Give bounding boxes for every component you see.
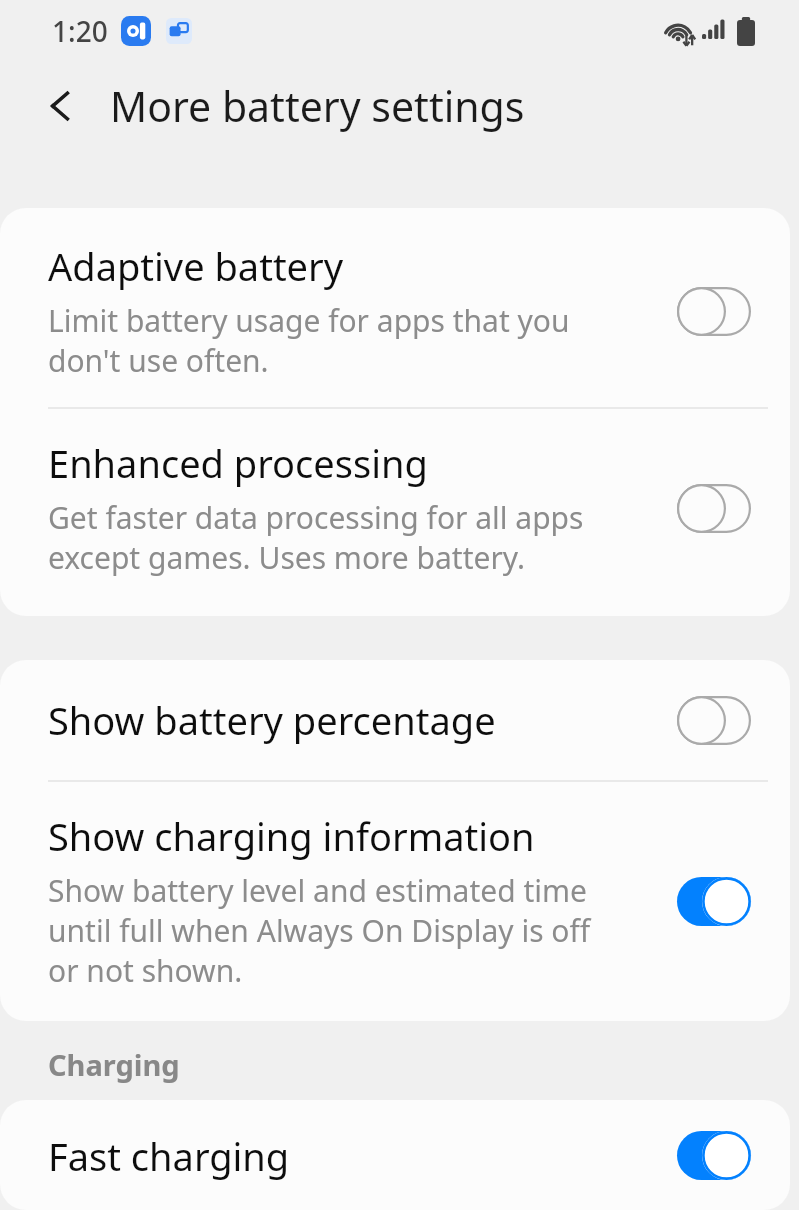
staticText: Limit battery usage for apps that you do… <box>48 300 570 381</box>
staticText: Adaptive battery <box>48 240 344 292</box>
button[interactable]: Show battery percentage <box>0 660 790 780</box>
staticText: Show battery level and estimated time un… <box>48 870 591 991</box>
staticText: Enhanced processing <box>48 437 428 489</box>
button[interactable]: Fast charging <box>0 1100 790 1210</box>
button[interactable]: Switch off <box>672 478 756 538</box>
staticText: Fast charging <box>48 1130 290 1180</box>
button[interactable]: Enhanced processing <box>0 409 790 616</box>
staticText: 1:20 <box>52 12 108 50</box>
button[interactable]: Switch off <box>672 690 756 750</box>
staticText: Show battery percentage <box>48 694 496 746</box>
button[interactable]: Adaptive battery <box>0 208 790 407</box>
staticText: More battery settings <box>110 78 525 134</box>
staticText: Get faster data processing for all apps … <box>48 497 584 578</box>
staticText: Show charging information <box>48 810 535 862</box>
button[interactable]: Switch on <box>672 1130 756 1180</box>
button[interactable]: Switch on <box>672 871 756 931</box>
button[interactable]: Back <box>32 77 90 135</box>
button[interactable]: Switch off <box>672 281 756 341</box>
button[interactable]: Show charging information <box>0 782 790 1021</box>
staticText: Charging <box>48 1045 180 1084</box>
